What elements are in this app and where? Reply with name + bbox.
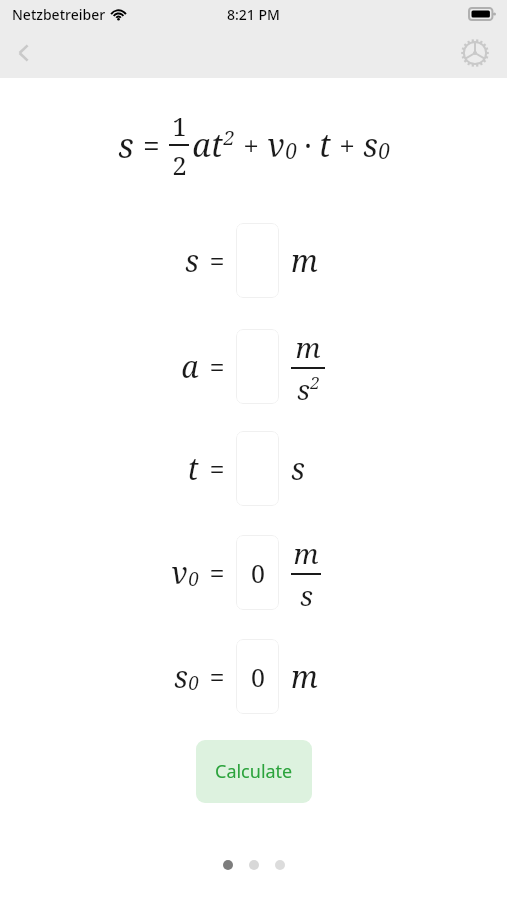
staticText: 0 (378, 137, 390, 166)
staticText: s (300, 576, 313, 610)
staticText: s (174, 656, 188, 697)
staticText: a (192, 123, 211, 167)
staticText: 0 (251, 660, 265, 694)
staticText: Netzbetreiber (12, 5, 106, 24)
staticText: 0 (285, 137, 297, 166)
staticText: 0 (188, 566, 199, 592)
staticText: v (267, 123, 285, 167)
staticText: s (291, 448, 305, 489)
staticText: s (363, 123, 378, 167)
button[interactable]: Input field (236, 431, 279, 506)
button[interactable]: Input field (236, 535, 279, 610)
staticText: 2 (172, 147, 187, 182)
button[interactable]: Settings (451, 29, 499, 77)
staticText: Calculate (215, 759, 293, 784)
staticText: m (293, 534, 319, 572)
staticText: = (209, 554, 225, 591)
staticText: t (211, 123, 223, 167)
button[interactable]: Input field (236, 223, 279, 298)
staticText: 8:21 PM (227, 5, 280, 24)
staticText: + (339, 126, 355, 164)
staticText: = (209, 348, 225, 385)
staticText: = (209, 658, 225, 695)
staticText: s (118, 122, 134, 168)
staticText: s (297, 370, 310, 404)
staticText: = (143, 125, 160, 166)
staticText: = (209, 242, 225, 279)
staticText: + (243, 126, 259, 164)
staticText: t (319, 123, 331, 167)
staticText: a (181, 346, 199, 387)
staticText: m (291, 656, 318, 697)
staticText: 0 (188, 670, 199, 696)
staticText: s (185, 240, 199, 281)
staticText: 2 (310, 371, 320, 394)
staticText: · (304, 125, 312, 166)
staticText: t (187, 448, 199, 489)
button[interactable]: Input field (236, 329, 279, 404)
button[interactable]: Input field (236, 639, 279, 714)
staticText: 0 (251, 556, 265, 590)
button[interactable]: Calculate (196, 740, 312, 803)
staticText: 2 (223, 124, 235, 151)
staticText: m (291, 240, 318, 281)
staticText: v (171, 552, 188, 593)
staticText: 1 (172, 108, 187, 143)
staticText: m (295, 328, 321, 366)
staticText: = (209, 450, 225, 487)
button[interactable]: Back (0, 29, 48, 77)
